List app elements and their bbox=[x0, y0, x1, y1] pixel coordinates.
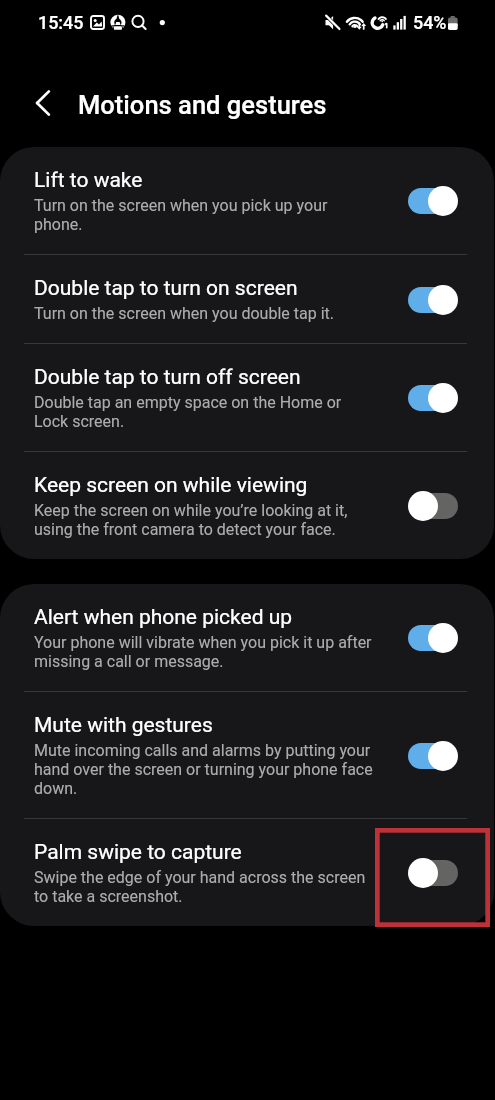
button[interactable]: Keep screen on while viewing bbox=[0, 452, 494, 559]
staticText: 54% bbox=[413, 12, 447, 33]
button[interactable]: On bbox=[408, 741, 458, 771]
staticText: Palm swipe to capture bbox=[34, 840, 242, 865]
staticText: 15:45 bbox=[38, 12, 84, 33]
button[interactable]: On bbox=[408, 383, 458, 413]
staticText: Mute incoming calls and alarms by puttin… bbox=[34, 741, 376, 798]
staticText: Turn on the screen when you double tap i… bbox=[34, 304, 334, 323]
button[interactable]: On bbox=[408, 285, 458, 315]
button[interactable]: Back bbox=[24, 84, 62, 122]
staticText: Alert when phone picked up bbox=[34, 605, 293, 630]
staticText: Turn on the screen when you pick up your… bbox=[34, 196, 376, 234]
staticText: Swipe the edge of your hand across the s… bbox=[34, 868, 376, 906]
button[interactable]: Mute with gestures bbox=[0, 692, 494, 818]
staticText: Keep the screen on while you’re looking … bbox=[34, 501, 376, 539]
button[interactable]: On bbox=[408, 186, 458, 216]
staticText: Keep screen on while viewing bbox=[34, 473, 308, 498]
button[interactable]: Double tap to turn on screen bbox=[0, 255, 494, 343]
staticText: Double tap to turn on screen bbox=[34, 276, 298, 301]
button[interactable]: Palm swipe to capture bbox=[0, 819, 494, 926]
staticText: Mute with gestures bbox=[34, 713, 213, 738]
button[interactable]: Lift to wake bbox=[0, 147, 494, 254]
staticText: Your phone will vibrate when you pick it… bbox=[34, 633, 376, 671]
staticText: Motions and gestures bbox=[78, 90, 327, 120]
button[interactable]: Off bbox=[408, 858, 458, 888]
staticText: Double tap an empty space on the Home or… bbox=[34, 393, 376, 431]
staticText: Lift to wake bbox=[34, 168, 143, 193]
staticText: Double tap to turn off screen bbox=[34, 365, 301, 390]
button[interactable]: Double tap to turn off screen bbox=[0, 344, 494, 451]
button[interactable]: Alert when phone picked up bbox=[0, 584, 494, 691]
button[interactable]: On bbox=[408, 623, 458, 653]
button[interactable]: Off bbox=[408, 491, 458, 521]
